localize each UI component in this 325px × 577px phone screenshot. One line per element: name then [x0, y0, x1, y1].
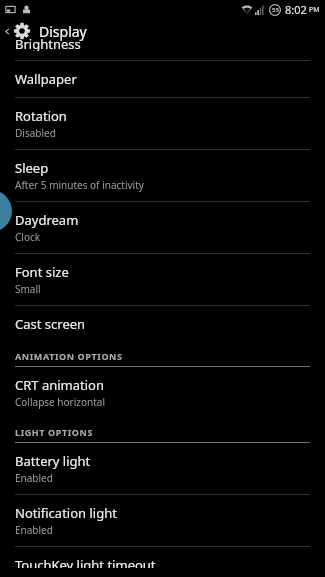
staticText: Cast screen	[15, 315, 86, 333]
button[interactable]: Notification light	[0, 495, 325, 546]
staticText: Enabled	[15, 523, 53, 537]
staticText: Display	[39, 22, 87, 41]
staticText: ANIMATION OPTIONS	[15, 350, 123, 362]
staticText: Battery light	[15, 452, 91, 470]
button[interactable]: Cast screen	[0, 306, 325, 342]
staticText: Font size	[15, 263, 69, 281]
staticText: Small	[15, 282, 41, 296]
staticText: Rotation	[15, 107, 67, 125]
staticText: TouchKey light timeout	[15, 556, 156, 568]
staticText: Sleep	[15, 159, 49, 177]
staticText: Enabled	[15, 471, 53, 485]
button[interactable]: Battery light	[0, 443, 325, 494]
staticText: Brightness	[15, 35, 81, 51]
button[interactable]: Sleep	[0, 150, 325, 201]
button[interactable]: Font size	[0, 254, 325, 305]
staticText: Collapse horizontal	[15, 395, 105, 409]
staticText: After 5 minutes of inactivity	[15, 178, 144, 192]
button[interactable]: Rotation	[0, 98, 325, 149]
staticText: LIGHT OPTIONS	[15, 426, 94, 438]
staticText: CRT animation	[15, 376, 104, 394]
button[interactable]: Daydream	[0, 202, 325, 253]
staticText: 55	[272, 6, 279, 14]
staticText: Daydream	[15, 211, 79, 229]
staticText: Clock	[15, 230, 41, 244]
button[interactable]: CRT animation	[0, 367, 325, 418]
button[interactable]: Up, Display	[0, 18, 325, 44]
button[interactable]: Brightness	[0, 44, 325, 60]
staticText: Wallpaper	[15, 70, 77, 88]
staticText: Notification light	[15, 504, 117, 522]
button[interactable]: Wallpaper	[0, 61, 325, 97]
staticText: Disabled	[15, 126, 56, 140]
button[interactable]: TouchKey light timeout	[0, 547, 325, 577]
staticText: 8:02	[285, 2, 307, 17]
staticText: PM	[309, 5, 320, 15]
